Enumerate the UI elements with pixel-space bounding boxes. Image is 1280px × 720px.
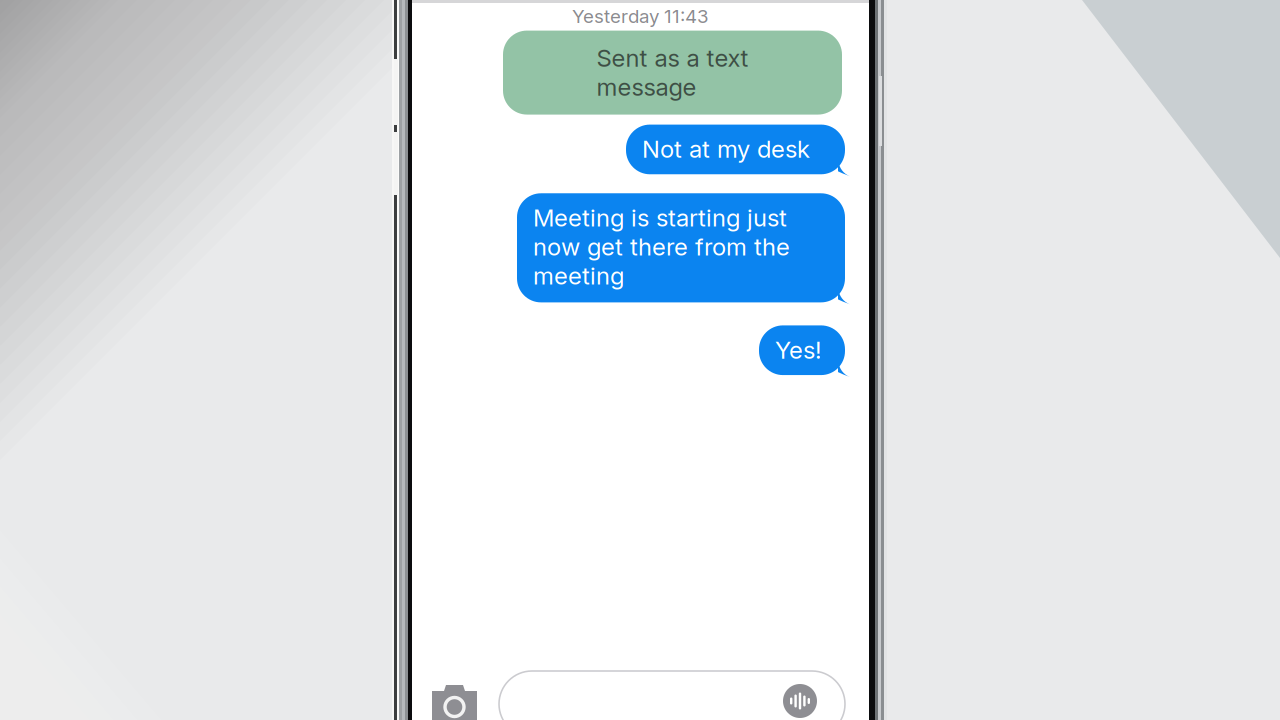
staticText: Sent as a text message [596,43,748,102]
button[interactable]: Record audio message [783,684,817,718]
staticText: Meeting is starting just now get there f… [533,203,790,290]
button[interactable]: Camera [432,685,477,720]
staticText: Not at my desk [642,135,810,164]
staticText: Yes! [775,335,822,364]
staticText: Yesterday 11:43 [572,5,709,28]
